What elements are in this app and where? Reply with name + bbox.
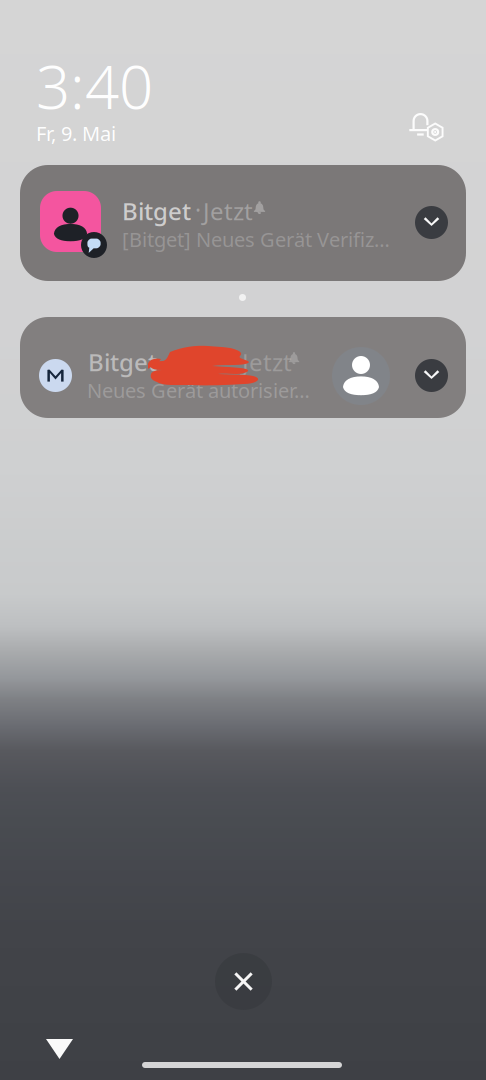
button[interactable]: Bitget xyxy=(20,165,466,281)
button[interactable]: Bitget xyxy=(20,317,466,418)
button[interactable]: Clear all notifications xyxy=(215,953,272,1010)
button[interactable]: Back xyxy=(46,1039,73,1059)
button[interactable]: Notification settings xyxy=(409,107,447,145)
staticText: Jetzt xyxy=(242,346,292,378)
staticText: Bitget xyxy=(88,346,157,378)
staticText: Neues Gerät autorisier… xyxy=(87,377,310,404)
staticText: · xyxy=(195,195,201,225)
staticText: Fr, 9. Mai xyxy=(36,120,116,147)
staticText: [Bitget] Neues Gerät Verifiz… xyxy=(122,226,390,253)
staticText: Jetzt xyxy=(203,195,253,227)
button[interactable]: Expand notification xyxy=(415,359,448,392)
staticText: 3:40 xyxy=(36,46,153,126)
staticText: Bitget xyxy=(122,195,191,227)
button[interactable]: Expand notification xyxy=(415,206,448,239)
